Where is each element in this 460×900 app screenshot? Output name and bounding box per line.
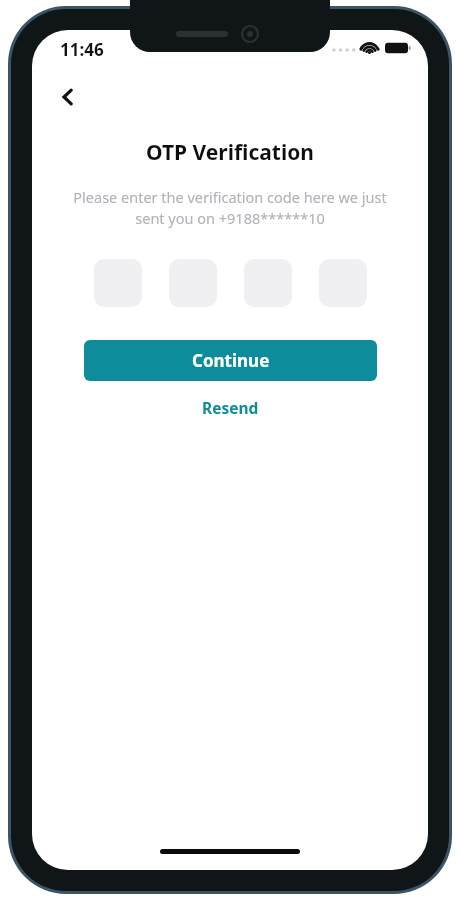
staticText: Please enter the verification code here … xyxy=(60,187,400,229)
staticText: 11:46 xyxy=(60,38,104,61)
button[interactable]: Resend xyxy=(188,390,273,425)
button[interactable]: Continue xyxy=(84,340,377,381)
staticText: OTP Verification xyxy=(146,138,314,167)
button[interactable]: Back xyxy=(46,75,90,119)
staticText: Resend xyxy=(202,397,259,418)
staticText: Continue xyxy=(192,349,270,372)
